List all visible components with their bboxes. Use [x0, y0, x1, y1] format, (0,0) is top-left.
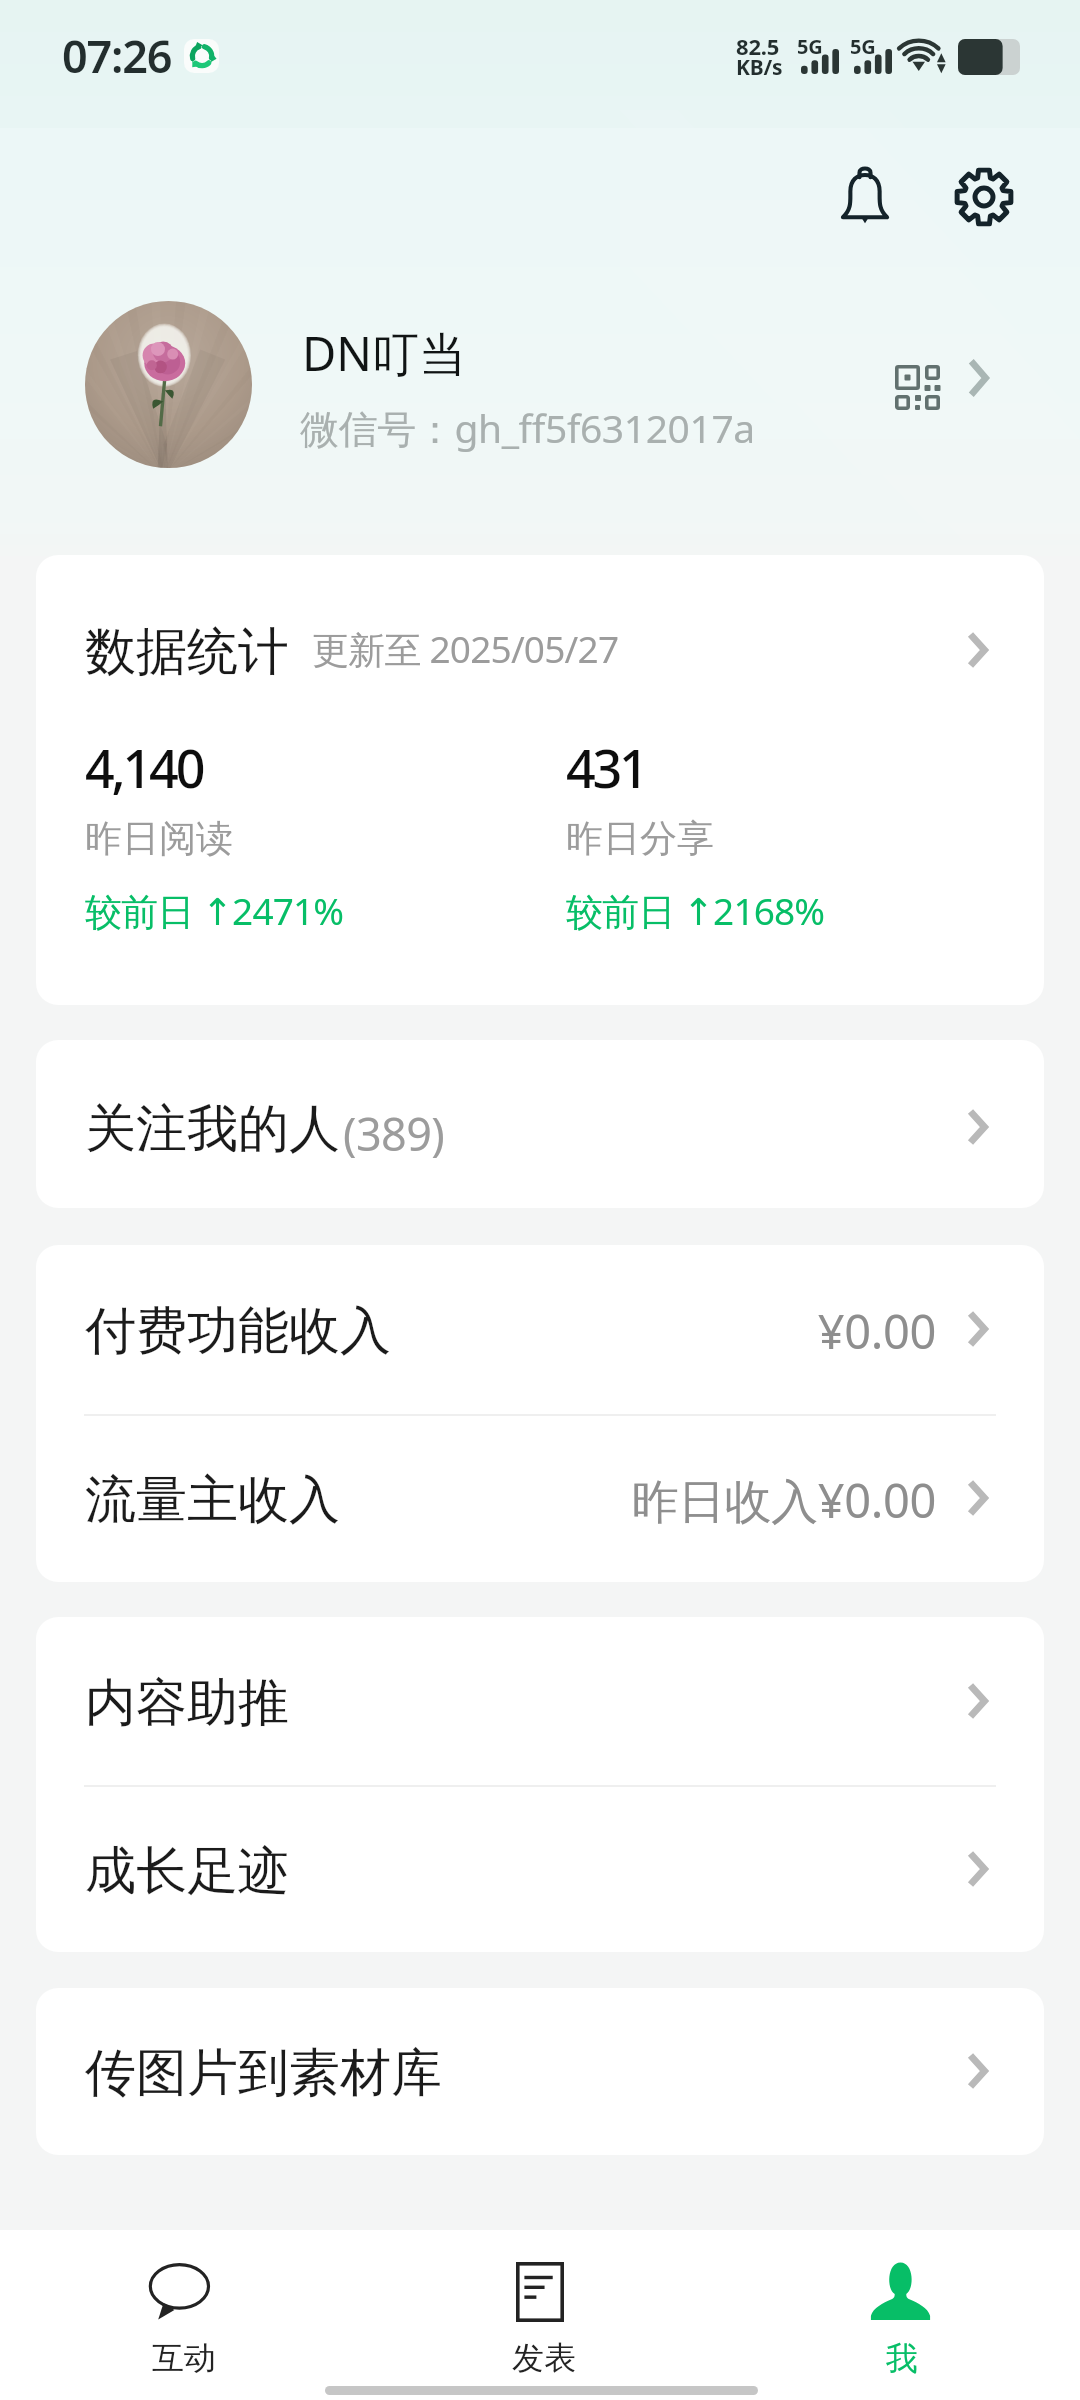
staticText: 传图片到素材库 [85, 2041, 442, 2105]
staticText: 431 [566, 732, 646, 803]
staticText: 发表 [512, 2338, 576, 2378]
staticText: 我 [886, 2338, 918, 2378]
staticText: 数据统计 [85, 620, 289, 684]
button[interactable]: Settings [938, 150, 1030, 242]
staticText: 内容助推 [85, 1671, 289, 1735]
staticText: 流量主收入 [85, 1468, 340, 1532]
staticText: DN叮当 [302, 321, 467, 385]
button[interactable] [36, 1617, 1080, 1785]
button[interactable]: Notifications [818, 150, 910, 242]
button[interactable] [0, 2230, 360, 2400]
staticText: 昨日收入¥0.00 [631, 1468, 936, 1532]
staticText: 5G [850, 33, 876, 60]
staticText: 互动 [152, 2338, 216, 2378]
button[interactable] [36, 1245, 1080, 1414]
button[interactable] [36, 1415, 1080, 1582]
staticText: 5G [797, 33, 823, 60]
staticText: 07:26 [62, 25, 172, 86]
button[interactable] [720, 2230, 1080, 2400]
staticText: 关注我的人 [85, 1097, 340, 1161]
staticText: KB/s [736, 53, 783, 82]
button[interactable] [360, 2230, 720, 2400]
staticText: 微信号：gh_ff5f6312017a [300, 401, 755, 454]
staticText: 较前日 ↑2168% [566, 885, 825, 936]
staticText: 昨日阅读 [85, 815, 233, 862]
staticText: ¥0.00 [817, 1299, 936, 1363]
button[interactable] [0, 286, 1080, 486]
staticText: (389) [343, 1103, 445, 1164]
staticText: 昨日分享 [566, 815, 714, 862]
staticText: 成长足迹 [85, 1839, 289, 1903]
button[interactable] [36, 1040, 1080, 1208]
button[interactable] [36, 1786, 1080, 1952]
staticText: 更新至 2025/05/27 [312, 623, 619, 674]
staticText: 4,140 [85, 732, 203, 803]
staticText: 较前日 ↑2471% [85, 885, 344, 936]
button[interactable] [36, 1988, 1080, 2155]
button[interactable] [36, 555, 1080, 720]
staticText: 付费功能收入 [85, 1299, 391, 1363]
staticText: 82.5 [736, 31, 780, 61]
